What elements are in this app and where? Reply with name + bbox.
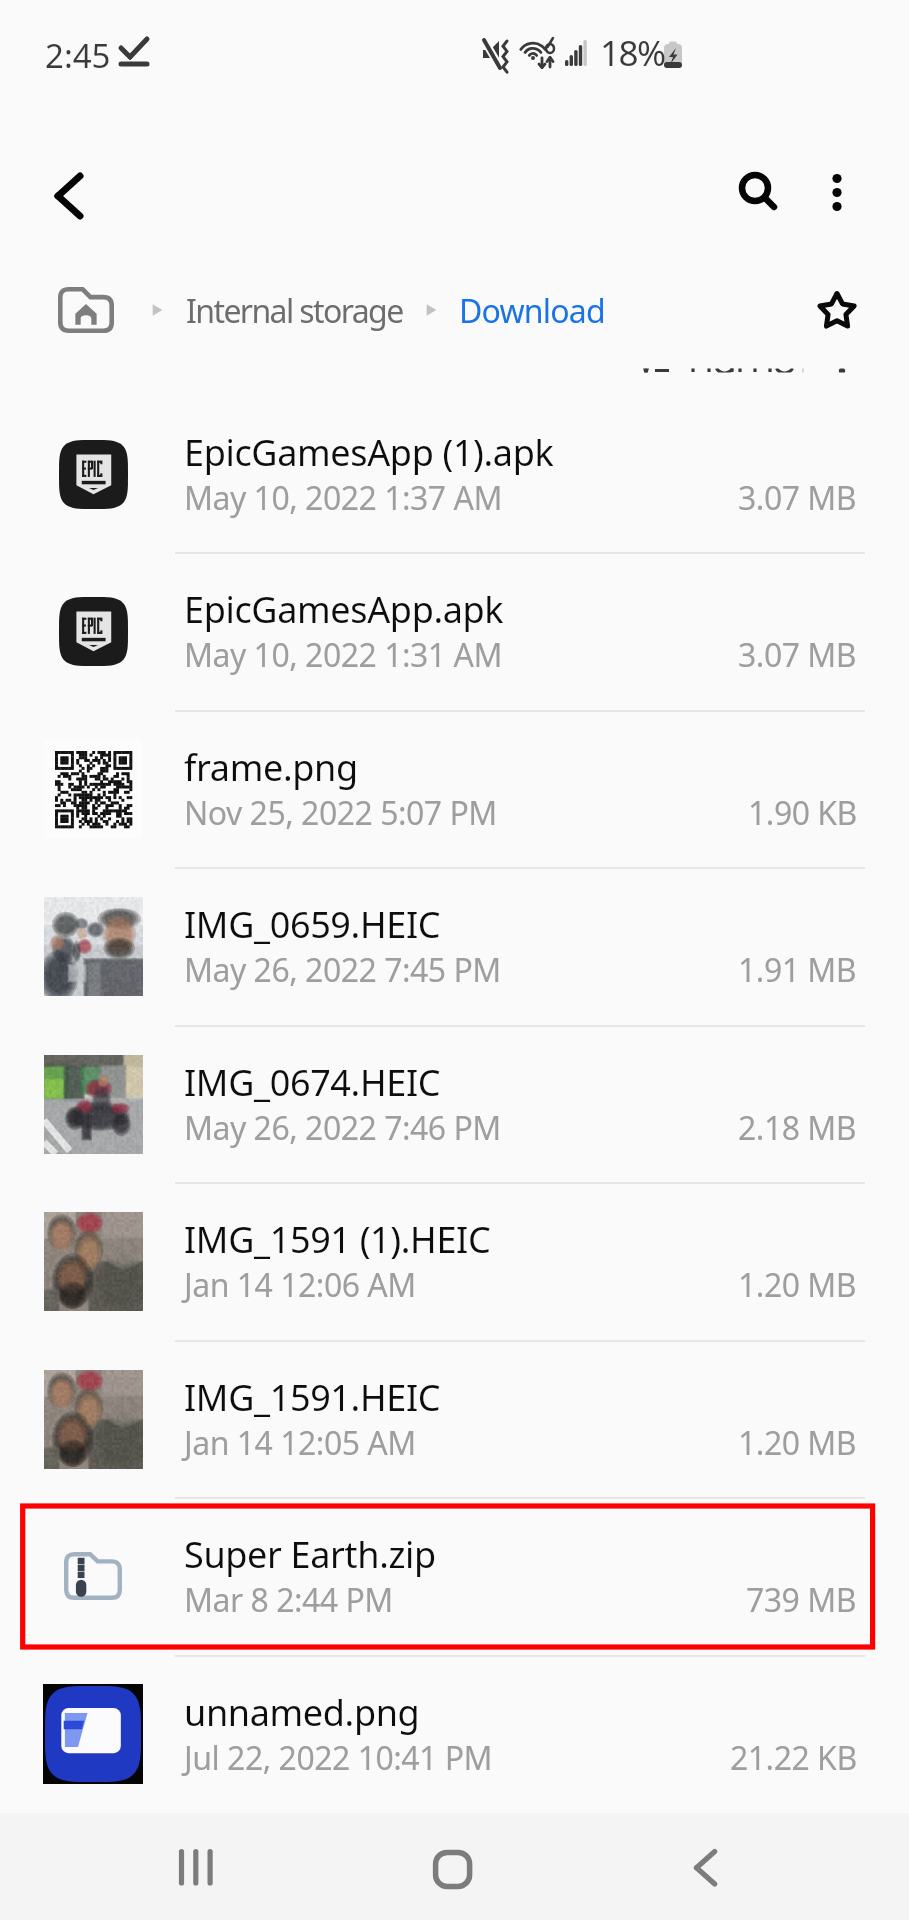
button[interactable]: IMG_0674.HEIC xyxy=(0,1025,909,1183)
button[interactable]: EpicGamesApp (1).apk xyxy=(0,395,909,553)
button[interactable]: More options xyxy=(793,140,881,228)
staticText: 2:45 xyxy=(45,33,111,78)
button[interactable]: Recents xyxy=(141,1813,251,1920)
button[interactable]: unnamed.png xyxy=(0,1655,909,1813)
staticText: unnamed.png xyxy=(184,1688,420,1737)
staticText: EpicGamesApp (1).apk xyxy=(184,428,554,477)
staticText: Mar 8 2:44 PM xyxy=(184,1578,393,1622)
staticText: 21.22 KB xyxy=(730,1736,857,1780)
button[interactable]: Home xyxy=(396,1813,506,1920)
button[interactable]: frame.png xyxy=(0,710,909,868)
button[interactable]: IMG_1591 (1).HEIC xyxy=(0,1182,909,1340)
staticText: Nov 25, 2022 5:07 PM xyxy=(184,791,497,835)
staticText: May 26, 2022 7:45 PM xyxy=(184,948,501,992)
staticText: Jan 14 12:05 AM xyxy=(184,1421,416,1465)
staticText: 3.07 MB xyxy=(738,633,857,677)
staticText: IMG_1591 (1).HEIC xyxy=(184,1215,491,1264)
button[interactable]: Download xyxy=(459,289,605,333)
button[interactable]: EpicGamesApp.apk xyxy=(0,552,909,710)
staticText: May 26, 2022 7:46 PM xyxy=(184,1106,501,1150)
staticText: IMG_0659.HEIC xyxy=(184,900,441,949)
staticText: EpicGamesApp.apk xyxy=(184,585,504,634)
staticText: Super Earth.zip xyxy=(184,1530,436,1579)
button[interactable]: IMG_0659.HEIC xyxy=(0,867,909,1025)
button[interactable]: Internal storage xyxy=(186,289,403,333)
button[interactable]: Back xyxy=(651,1813,761,1920)
staticText: 1.20 MB xyxy=(738,1421,857,1465)
staticText: 1.91 MB xyxy=(738,948,857,992)
button[interactable]: Internal storage root xyxy=(58,287,114,333)
button[interactable]: Super Earth.zip xyxy=(0,1497,909,1655)
staticText: 739 MB xyxy=(746,1578,857,1622)
staticText: May 10, 2022 1:31 AM xyxy=(184,633,502,677)
staticText: IMG_0674.HEIC xyxy=(184,1058,441,1107)
staticText: May 10, 2022 1:37 AM xyxy=(184,476,502,520)
staticText: 1.90 KB xyxy=(748,791,857,835)
staticText: 3.07 MB xyxy=(738,476,857,520)
button[interactable]: IMG_1591.HEIC xyxy=(0,1340,909,1498)
staticText: Jul 22, 2022 10:41 PM xyxy=(184,1736,493,1780)
staticText: Jan 14 12:06 AM xyxy=(184,1263,416,1307)
staticText: 2.18 MB xyxy=(738,1106,857,1150)
button[interactable]: Navigate up xyxy=(25,140,113,228)
button[interactable]: Add to Favorites xyxy=(795,268,879,352)
staticText: frame.png xyxy=(184,743,358,792)
staticText: 18% xyxy=(600,29,665,77)
button[interactable]: Sort by name xyxy=(0,0,909,372)
staticText: 1.20 MB xyxy=(738,1263,857,1307)
button[interactable]: Search xyxy=(714,140,802,228)
staticText: IMG_1591.HEIC xyxy=(184,1373,441,1422)
